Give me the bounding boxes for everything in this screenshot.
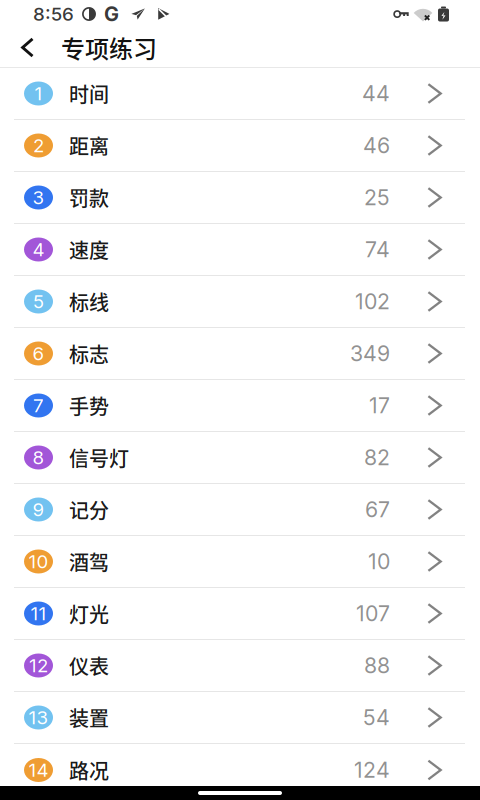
- button[interactable]: 13: [0, 692, 480, 744]
- button[interactable]: 3: [0, 172, 480, 224]
- staticText: 酒驾: [69, 547, 109, 576]
- staticText: 手势: [69, 391, 109, 420]
- staticText: 12: [29, 654, 48, 677]
- staticText: 时间: [69, 79, 109, 108]
- staticText: 标线: [69, 287, 109, 316]
- button[interactable]: 6: [0, 328, 480, 380]
- button[interactable]: Back: [7, 27, 48, 68]
- staticText: 1: [34, 82, 42, 105]
- staticText: 2: [33, 134, 44, 157]
- staticText: 14: [28, 759, 48, 781]
- staticText: 88: [364, 653, 390, 678]
- staticText: 10: [368, 549, 390, 574]
- button[interactable]: 7: [0, 380, 480, 432]
- staticText: 路况: [69, 755, 109, 784]
- staticText: 6: [32, 342, 44, 365]
- button[interactable]: 12: [0, 640, 480, 692]
- staticText: 102: [355, 289, 390, 314]
- staticText: 9: [32, 498, 44, 521]
- staticText: 124: [354, 757, 390, 783]
- staticText: 44: [362, 81, 390, 106]
- staticText: 25: [364, 185, 390, 210]
- staticText: 13: [28, 706, 48, 729]
- staticText: 8:56: [33, 3, 74, 25]
- staticText: 灯光: [69, 599, 109, 628]
- staticText: 信号灯: [69, 443, 129, 472]
- staticText: 17: [369, 393, 390, 418]
- button[interactable]: 11: [0, 588, 480, 640]
- staticText: 349: [350, 341, 390, 366]
- staticText: 罚款: [69, 183, 109, 212]
- staticText: 4: [32, 238, 44, 261]
- staticText: 记分: [69, 495, 109, 524]
- staticText: 11: [30, 602, 46, 625]
- staticText: 标志: [69, 339, 109, 368]
- staticText: 距离: [69, 131, 109, 160]
- staticText: G: [104, 2, 119, 26]
- staticText: 82: [364, 445, 390, 470]
- staticText: 装置: [69, 703, 109, 732]
- staticText: 5: [33, 290, 44, 313]
- staticText: 仪表: [69, 651, 109, 680]
- staticText: 专项练习: [61, 30, 157, 65]
- button[interactable]: 14: [0, 744, 480, 796]
- button[interactable]: 9: [0, 484, 480, 536]
- staticText: 速度: [69, 235, 109, 264]
- staticText: 46: [363, 133, 390, 158]
- staticText: 8: [32, 446, 44, 469]
- button[interactable]: 10: [0, 536, 480, 588]
- button[interactable]: 8: [0, 432, 480, 484]
- staticText: 10: [28, 550, 48, 573]
- staticText: 3: [32, 186, 44, 209]
- button[interactable]: 1: [0, 68, 480, 120]
- button[interactable]: 2: [0, 120, 480, 172]
- staticText: 107: [356, 601, 390, 626]
- staticText: 67: [365, 497, 390, 522]
- staticText: 74: [365, 237, 390, 262]
- staticText: 54: [363, 705, 390, 730]
- button[interactable]: 4: [0, 224, 480, 276]
- staticText: 7: [33, 394, 44, 417]
- button[interactable]: 5: [0, 276, 480, 328]
